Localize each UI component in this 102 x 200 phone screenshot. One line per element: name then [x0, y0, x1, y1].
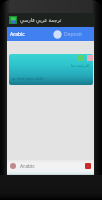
button[interactable]: Record — [85, 163, 91, 169]
staticText: ترجمة عربي فارسي — [20, 17, 62, 24]
staticText: Deposit — [64, 31, 83, 38]
button[interactable]: الترجمة هنا — [9, 54, 93, 85]
staticText: Arabic — [10, 31, 25, 38]
button[interactable]: Deposit — [50, 27, 94, 41]
button[interactable]: Arabic — [7, 27, 50, 41]
staticText: الترجمة هنا — [71, 63, 90, 68]
button[interactable]: Arabic — [7, 160, 94, 172]
staticText: ar text goes with — [12, 76, 44, 81]
staticText: Arabic — [20, 163, 35, 170]
